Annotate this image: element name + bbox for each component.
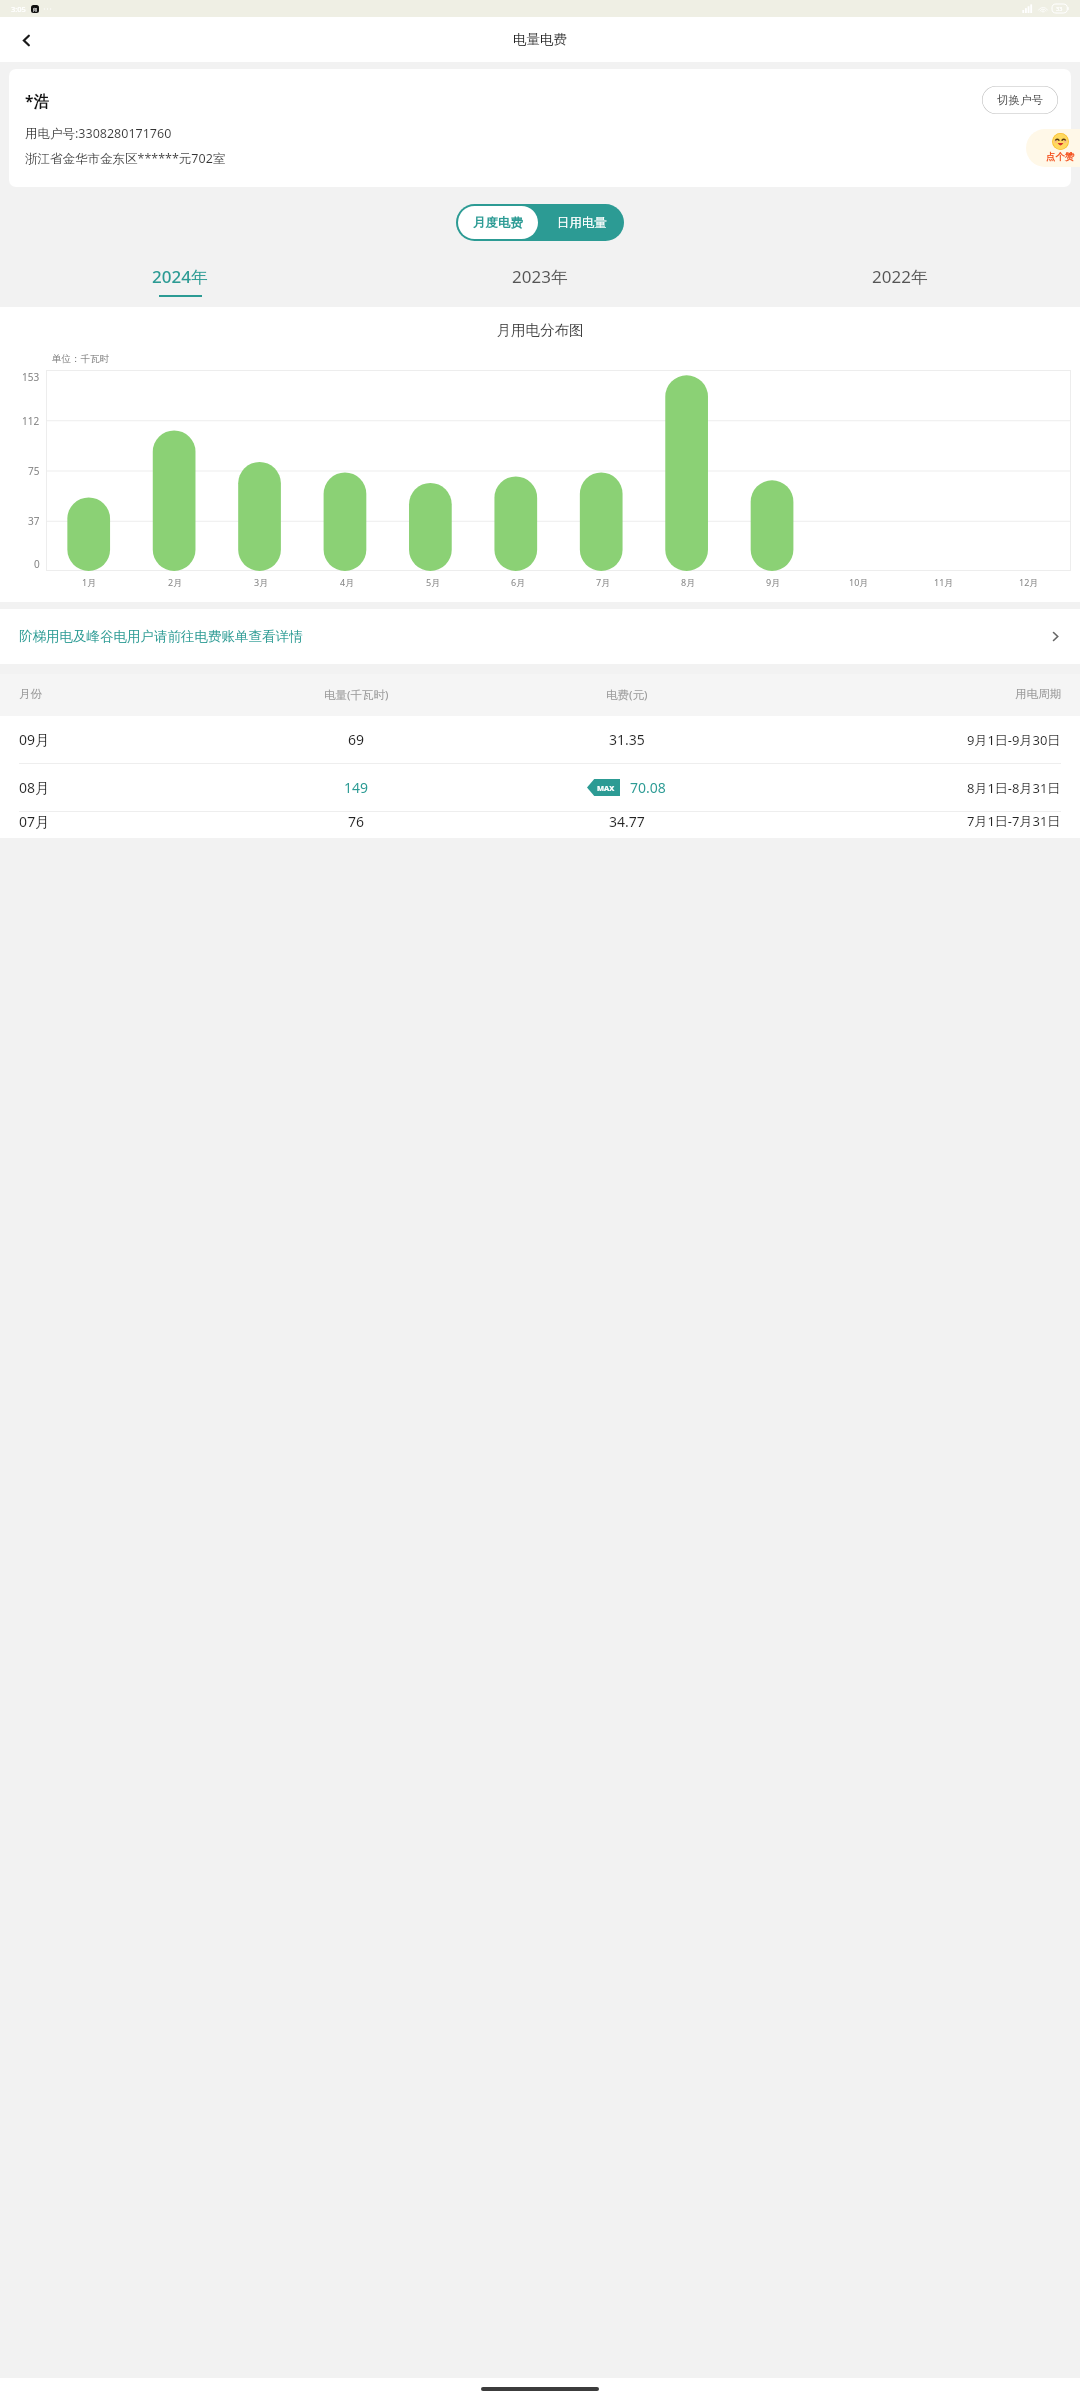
button[interactable]: 点个赞 [1026,129,1080,167]
staticText: 0 [34,557,40,571]
staticText: 点个赞 [1046,151,1075,163]
staticText: 31.35 [609,730,645,749]
staticText: 用电户号:3308280171760 [25,125,172,142]
staticText: 6月 [511,576,526,588]
button[interactable]: 08月 [0,764,1080,811]
staticText: 浙江省金华市金东区******元702室 [25,150,226,167]
staticText: 日用电量 [557,215,607,231]
button[interactable]: 月度电费 [458,206,538,239]
staticText: 1月 [82,576,97,588]
staticText: 8月1日-8月31日 [967,779,1061,797]
button[interactable]: 2024年 [0,255,360,307]
staticText: 34.77 [609,812,645,831]
staticText: 11月 [934,576,954,588]
staticText: 5月 [426,576,441,588]
staticText: 75 [28,464,40,478]
staticText: 3:05 [11,4,26,14]
button[interactable]: 07月 [0,812,1080,838]
button[interactable]: Back [9,23,43,57]
staticText: 08月 [19,778,50,797]
staticText: 8月 [681,576,696,588]
staticText: 9月 [766,576,781,588]
staticText: 电量(千瓦时) [324,687,389,703]
staticText: 月度电费 [473,215,523,231]
staticText: 得 [33,7,37,12]
staticText: 37 [28,514,40,528]
staticText: 月用电分布图 [0,321,1080,339]
staticText: 电费(元) [606,687,648,703]
staticText: MAX [597,783,615,793]
button[interactable]: 09月 [0,716,1080,763]
button[interactable]: 2023年 [360,255,720,307]
staticText: 2022年 [872,265,928,288]
staticText: 70.08 [630,778,666,797]
staticText: 112 [22,414,40,428]
staticText: 7月1日-7月31日 [967,812,1061,830]
staticText: 153 [22,370,40,384]
staticText: 69 [348,730,365,749]
staticText: 2023年 [512,265,568,288]
button[interactable]: 日用电量 [540,204,624,241]
button[interactable]: 阶梯用电及峰谷电用户请前往电费账单查看详情 [0,609,1080,664]
staticText: 阶梯用电及峰谷电用户请前往电费账单查看详情 [19,628,303,645]
staticText: 切换户号 [997,93,1043,107]
staticText: 2024年 [152,265,208,288]
staticText: 2月 [168,576,183,588]
staticText: 12月 [1019,576,1039,588]
staticText: 用电周期 [1015,687,1061,701]
staticText: 76 [348,812,365,831]
staticText: 09月 [19,730,50,749]
staticText: 7月 [596,576,611,588]
staticText: 单位：千瓦时 [52,353,109,365]
staticText: *浩 [25,90,49,111]
staticText: 07月 [19,812,50,831]
staticText: 33 [1056,5,1063,12]
staticText: 4月 [340,576,355,588]
staticText: 10月 [849,576,869,588]
staticText: 电量电费 [513,31,567,48]
staticText: 3月 [254,576,269,588]
button[interactable]: 切换户号 [982,86,1058,114]
staticText: 149 [344,778,369,797]
staticText: 9月1日-9月30日 [967,731,1061,749]
staticText: 月份 [19,687,42,701]
button[interactable]: 2022年 [720,255,1080,307]
